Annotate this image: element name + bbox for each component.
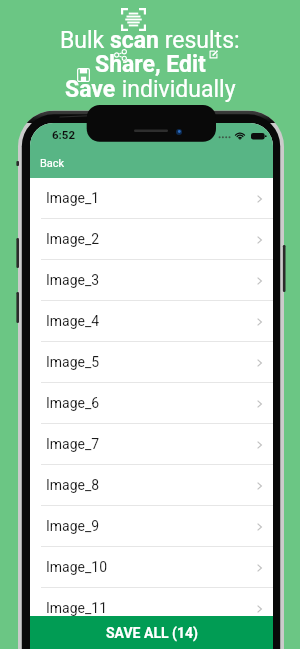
staticText: Share, Edit [95, 51, 206, 78]
button[interactable]: Image_7 [30, 424, 273, 465]
button[interactable]: Image_12 [30, 629, 273, 649]
button[interactable]: Image_8 [30, 465, 273, 506]
staticText: results: [159, 27, 240, 54]
staticText: Image_1 [46, 190, 100, 206]
button[interactable]: Image_6 [30, 383, 273, 424]
staticText: Image_9 [46, 518, 100, 534]
staticText: Bulk [60, 27, 110, 54]
button[interactable]: Image_10 [30, 547, 273, 588]
button[interactable]: Back [30, 142, 273, 178]
staticText: Image_3 [46, 272, 100, 288]
button[interactable]: Image_4 [30, 301, 273, 342]
staticText: Image_2 [46, 231, 100, 247]
staticText: Image_8 [46, 477, 100, 493]
button[interactable]: Image_11 [30, 588, 273, 629]
staticText: scan [110, 27, 159, 54]
staticText: Image_12 [46, 631, 108, 647]
staticText: Image_5 [46, 354, 100, 370]
button[interactable]: Image_5 [30, 342, 273, 383]
staticText: Image_4 [46, 313, 100, 329]
staticText: Image_6 [46, 395, 100, 411]
staticText: Image_11 [46, 600, 108, 616]
button[interactable]: Image_9 [30, 506, 273, 547]
staticText: 6:52 [52, 128, 76, 141]
staticText: individually [116, 76, 236, 103]
staticText: Back [40, 157, 65, 170]
button[interactable]: Image_3 [30, 260, 273, 301]
staticText: Image_10 [46, 559, 108, 575]
staticText: Save [65, 76, 116, 103]
button[interactable]: SAVE ALL (14) [30, 616, 273, 649]
staticText: SAVE ALL (14) [106, 625, 198, 641]
button[interactable]: Image_1 [30, 178, 273, 219]
staticText: Image_7 [46, 436, 100, 452]
button[interactable]: Image_2 [30, 219, 273, 260]
